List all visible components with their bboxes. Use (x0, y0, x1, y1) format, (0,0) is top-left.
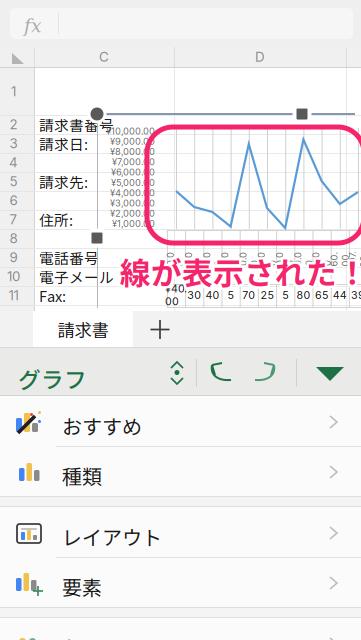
button[interactable]: Select chart element (160, 348, 194, 396)
staticText: ¥9,000.00 (110, 136, 155, 147)
staticText: 線が表示された！ (120, 251, 361, 296)
staticText: 40 (205, 288, 219, 301)
staticText: 線が表示された！ (122, 247, 361, 291)
staticText: 線が表示された！ (118, 249, 361, 293)
button[interactable]: 種類 (0, 446, 361, 496)
staticText: 70 (242, 288, 255, 301)
staticText: ¥10,000.00 (106, 125, 155, 137)
staticText: 60.00 (332, 248, 347, 270)
staticText: 5 (282, 288, 288, 301)
staticText: 5 (9, 173, 17, 189)
staticText: 107.00 (349, 248, 361, 270)
staticText: ¥40.00 (165, 282, 187, 308)
button[interactable]: Collapse (300, 348, 360, 396)
staticText: 請求書 (57, 317, 108, 342)
staticText: 請求先: (39, 171, 88, 192)
staticText: レイアウト (62, 522, 162, 551)
staticText: 線が表示された！ (120, 247, 361, 291)
staticText: 2 (9, 116, 17, 132)
button[interactable]: 色 (0, 618, 361, 640)
staticText: 10 (7, 268, 20, 284)
staticText: ¥1,000.00 (112, 218, 155, 229)
button[interactable]: レイアウト (0, 507, 361, 557)
staticText: 要素 (62, 572, 102, 601)
staticText: 0.00 (260, 248, 274, 270)
staticText: 0.00 (296, 248, 310, 270)
staticText: ¥5,000.00 (111, 177, 155, 188)
staticText: 線が表示された！ (122, 251, 361, 296)
staticText: 請求書番号 (39, 114, 114, 135)
staticText: 電子メール (39, 266, 114, 287)
staticText: おすすめ (62, 411, 142, 440)
staticText: 11 (8, 287, 18, 303)
staticText: 1 (11, 83, 16, 99)
staticText: 線が表示された！ (120, 249, 361, 293)
staticText: 色 (62, 633, 82, 640)
staticText: 3 (9, 135, 17, 151)
staticText: D (255, 49, 265, 65)
staticText: Fax: (39, 285, 66, 306)
staticText: ¥4,000.00 (110, 187, 155, 198)
staticText: ¥7,000.00 (112, 156, 155, 168)
staticText: 線が表示された！ (122, 249, 361, 293)
staticText: 電話番号 (39, 247, 99, 268)
staticText: fx (24, 15, 42, 37)
staticText: グラフ (18, 362, 87, 395)
button[interactable]: 請求書 (33, 311, 133, 348)
button[interactable]: Redo (243, 348, 289, 396)
staticText: 住所: (39, 209, 73, 230)
button[interactable]: Add sheet (133, 311, 187, 348)
staticText: ¥3,000.00 (110, 197, 155, 209)
staticText: 7 (9, 211, 17, 227)
staticText: 種類 (62, 461, 102, 490)
button[interactable]: 要素 (0, 557, 361, 607)
button[interactable]: Undo (197, 348, 243, 396)
staticText: 0.00 (315, 248, 329, 270)
staticText: 5 (228, 288, 234, 301)
staticText: 65 (315, 288, 328, 301)
staticText: 9 (9, 249, 17, 265)
staticText: 0.00 (205, 248, 219, 270)
staticText: 0.00 (242, 248, 256, 270)
staticText: 25 (260, 288, 273, 301)
staticText: 線が表示された！ (118, 247, 361, 291)
staticText: 8 (9, 230, 17, 246)
staticText: 線が表示された！ (118, 251, 361, 296)
staticText: 0.00 (278, 248, 292, 270)
staticText: 4 (9, 154, 18, 170)
staticText: 0.00 (169, 248, 183, 270)
button[interactable]: おすすめ (0, 396, 361, 446)
staticText: 30 (187, 288, 201, 301)
staticText: C (99, 49, 109, 65)
staticText: ¥6,000.00 (111, 167, 155, 178)
staticText: 0.00 (224, 248, 238, 270)
staticText: ¥2,000.00 (110, 208, 155, 219)
staticText: 80 (296, 288, 310, 301)
staticText: ¥8,000.00 (110, 146, 155, 157)
staticText: 請求日: (39, 133, 88, 154)
staticText: 44 (333, 288, 347, 301)
button[interactable]: Formula bar (10, 8, 353, 39)
staticText: 39 (351, 288, 361, 301)
staticText: 6 (9, 192, 17, 208)
staticText: 0.00 (187, 248, 201, 270)
